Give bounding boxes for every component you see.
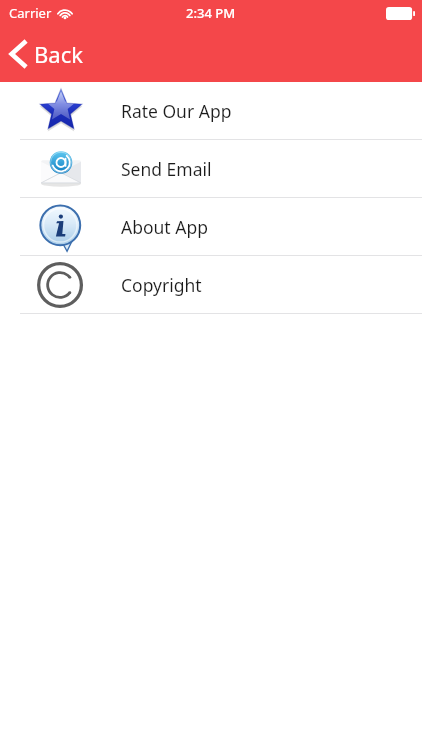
staticText: 2:34 PM <box>186 4 236 22</box>
staticText: Copyright <box>121 273 202 297</box>
staticText: Back <box>34 39 83 69</box>
button[interactable]: Send Email <box>0 140 422 197</box>
staticText: Send Email <box>121 157 212 181</box>
button[interactable]: Copyright <box>0 256 422 313</box>
staticText: Rate Our App <box>121 99 232 123</box>
staticText: Carrier <box>9 4 52 22</box>
button[interactable]: Rate Our App <box>0 82 422 139</box>
button[interactable]: Back <box>0 34 99 74</box>
staticText: About App <box>121 215 208 239</box>
button[interactable]: About App <box>0 198 422 255</box>
